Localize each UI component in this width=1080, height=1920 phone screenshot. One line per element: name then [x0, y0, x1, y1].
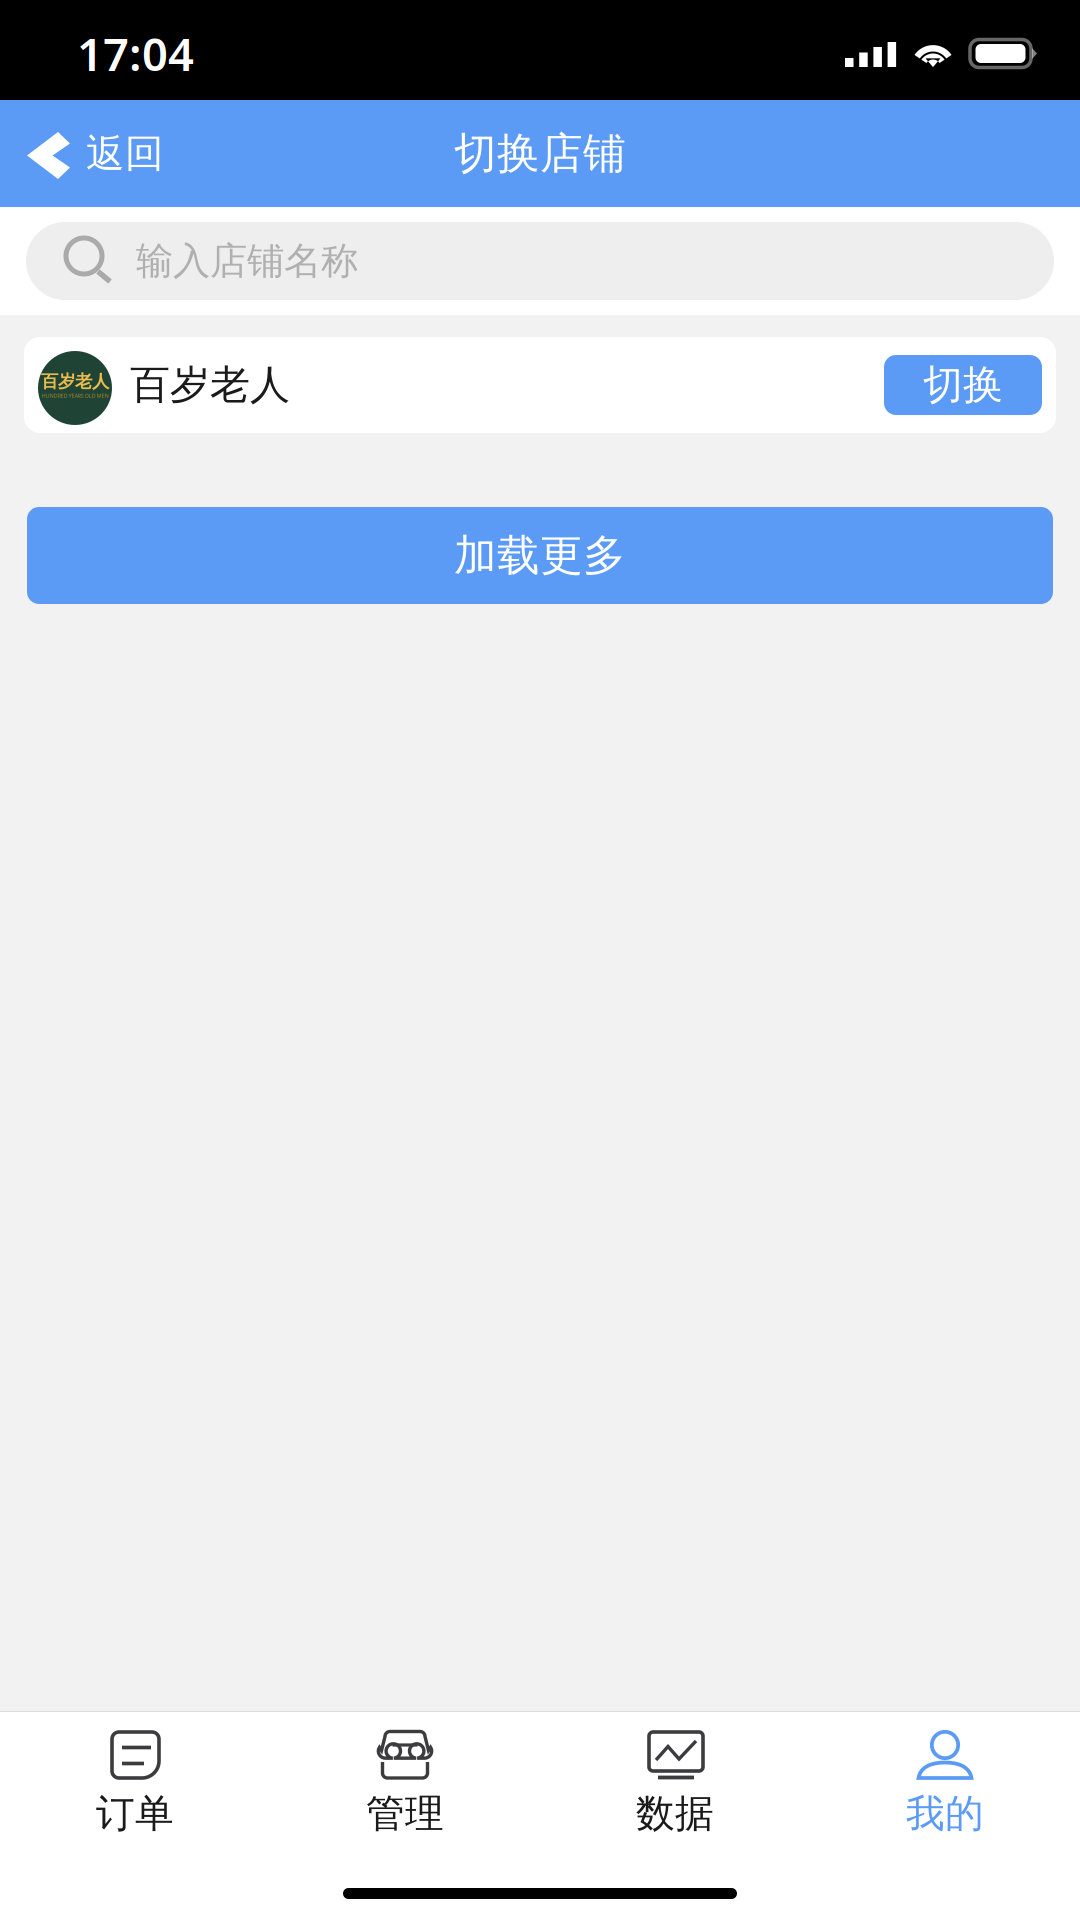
button[interactable]: 订单: [0, 1712, 270, 1850]
button[interactable]: 返回: [0, 100, 188, 207]
staticText: 加载更多: [454, 529, 626, 582]
button[interactable]: 输入店铺名称: [0, 207, 1080, 315]
staticText: 百岁老人: [41, 371, 109, 392]
staticText: 输入店铺名称: [136, 238, 358, 284]
staticText: 切换: [923, 360, 1003, 409]
button[interactable]: 切换: [884, 355, 1042, 415]
staticText: 17:04: [77, 23, 194, 84]
staticText: 订单: [96, 1790, 174, 1837]
staticText: HUNDRED YEARS OLD MEN: [41, 392, 108, 399]
staticText: 管理: [366, 1790, 444, 1837]
button[interactable]: 加载更多: [0, 507, 1080, 604]
staticText: 百岁老人: [130, 360, 290, 409]
staticText: 切换店铺: [454, 127, 626, 180]
staticText: 我的: [906, 1790, 984, 1837]
staticText: 返回: [86, 130, 164, 177]
button[interactable]: 我的: [810, 1712, 1080, 1850]
button[interactable]: 管理: [270, 1712, 540, 1850]
staticText: 数据: [636, 1790, 714, 1837]
button[interactable]: 数据: [540, 1712, 810, 1850]
